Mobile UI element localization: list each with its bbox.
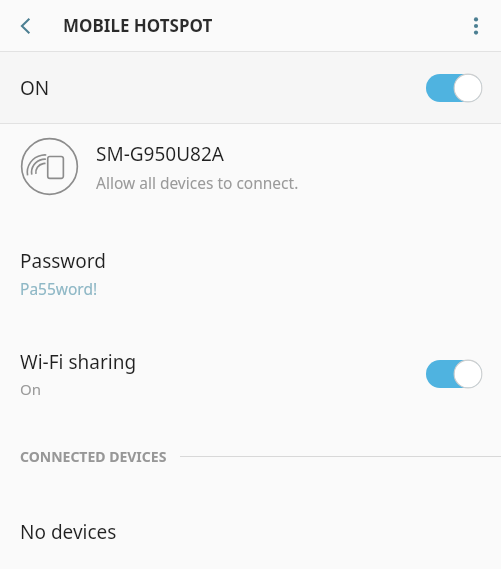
staticText: SM-G950U82A (96, 141, 224, 167)
staticText: CONNECTED DEVICES (20, 447, 167, 466)
button[interactable]: Wi-Fi sharing (0, 343, 501, 405)
staticText: Wi-Fi sharing (20, 349, 137, 375)
staticText: No devices (20, 519, 117, 545)
button[interactable]: More options (456, 6, 496, 46)
button[interactable]: ON (0, 52, 501, 123)
staticText: Password (20, 248, 106, 274)
button[interactable]: SM-G950U82A (0, 124, 501, 209)
staticText: Pa55word! (20, 278, 98, 299)
button[interactable]: Password (0, 242, 501, 309)
button[interactable]: No devices (0, 507, 501, 557)
staticText: ON (20, 75, 50, 101)
staticText: Allow all devices to connect. (96, 172, 299, 193)
staticText: On (20, 379, 41, 399)
staticText: MOBILE HOTSPOT (63, 14, 213, 37)
button[interactable]: Back (6, 6, 46, 46)
